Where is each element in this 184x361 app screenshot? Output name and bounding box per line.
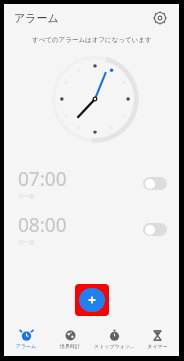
staticText: 08:00	[18, 212, 67, 238]
button[interactable]: タイマー	[136, 327, 179, 351]
staticText: 月〜金	[18, 239, 35, 246]
button[interactable]: Toggle alarm 07:00	[143, 177, 167, 190]
staticText: アラーム	[14, 11, 59, 25]
button[interactable]: Settings	[149, 7, 171, 29]
staticText: ストップウォッ…	[92, 343, 136, 350]
button[interactable]: ストップウォッ…	[92, 327, 136, 352]
staticText: すべてのアラームはオフになっています	[32, 36, 152, 44]
staticText: 世界時計	[48, 343, 92, 349]
staticText: アラーム	[4, 343, 48, 349]
button[interactable]: Add alarm	[79, 288, 105, 312]
button[interactable]: 07:00	[4, 160, 179, 206]
button[interactable]: 08:00	[4, 206, 179, 252]
staticText: 07:00	[18, 166, 67, 192]
button[interactable]: 世界時計	[48, 327, 92, 351]
staticText: タイマー	[136, 343, 179, 349]
button[interactable]: アラーム	[4, 327, 48, 351]
button[interactable]: Toggle alarm 08:00	[143, 223, 167, 236]
staticText: 月〜金	[18, 193, 35, 200]
